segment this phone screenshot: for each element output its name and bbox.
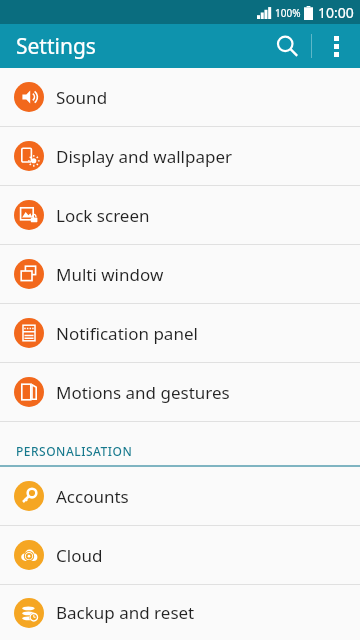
staticText: 10:00 [318,3,354,22]
staticText: Settings [16,32,96,61]
button[interactable]: Backup and reset [0,585,360,640]
button[interactable]: Multi window [0,245,360,303]
button[interactable]: Motions and gestures [0,363,360,421]
staticText: Sound [56,86,108,109]
staticText: Display and wallpaper [56,145,233,168]
staticText: PERSONALISATION [16,443,133,459]
staticText: Lock screen [56,204,150,227]
button[interactable]: Accounts [0,467,360,525]
staticText: Multi window [56,263,164,286]
staticText: Accounts [56,485,129,508]
button[interactable]: Cloud [0,526,360,584]
button[interactable]: Notification panel [0,304,360,362]
staticText: Cloud [56,544,103,567]
staticText: 100% [275,6,301,20]
button[interactable]: More options [312,24,360,68]
button[interactable]: Display and wallpaper [0,127,360,185]
button[interactable]: Lock screen [0,186,360,244]
staticText: Backup and reset [56,601,195,624]
staticText: Notification panel [56,322,198,345]
staticText: Motions and gestures [56,381,230,404]
button[interactable]: Sound [0,68,360,126]
button[interactable]: Search [263,24,311,68]
